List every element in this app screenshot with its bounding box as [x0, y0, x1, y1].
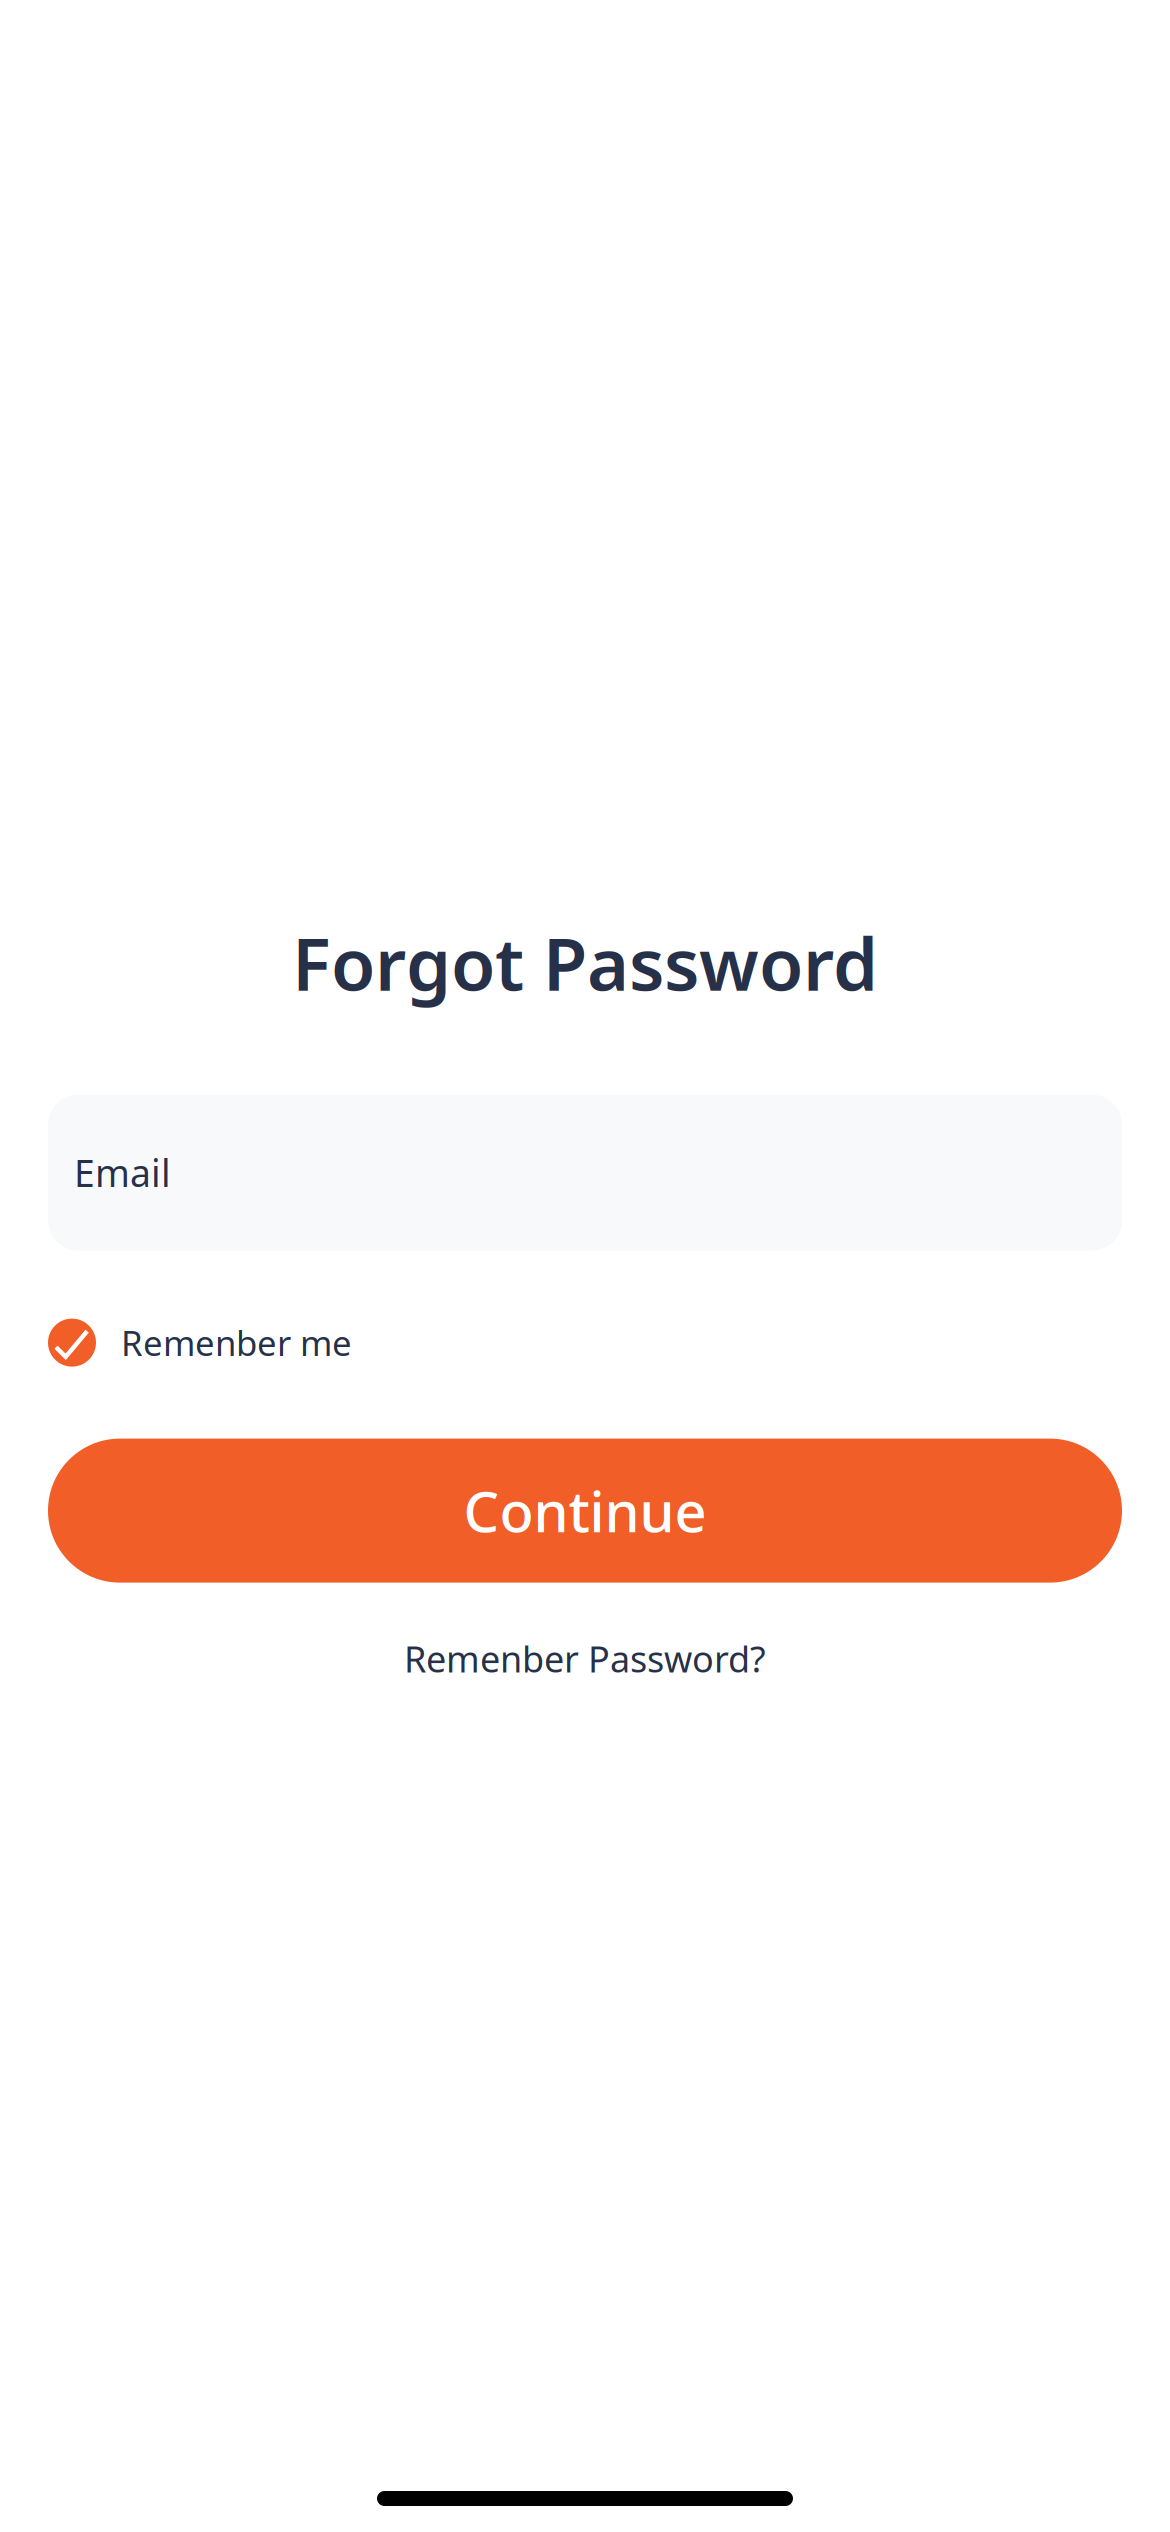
staticText: Email [74, 1148, 171, 1197]
staticText: Remenber Password? [404, 1635, 766, 1682]
button[interactable]: Email [48, 1095, 1122, 1251]
button[interactable]: Remenber me [48, 1319, 1122, 1367]
staticText: Forgot Password [292, 915, 878, 1011]
button[interactable]: Continue [48, 1439, 1122, 1583]
staticText: Continue [463, 1473, 706, 1548]
button[interactable]: Remenber Password? [48, 1635, 1122, 1682]
staticText: Remenber me [121, 1320, 352, 1366]
